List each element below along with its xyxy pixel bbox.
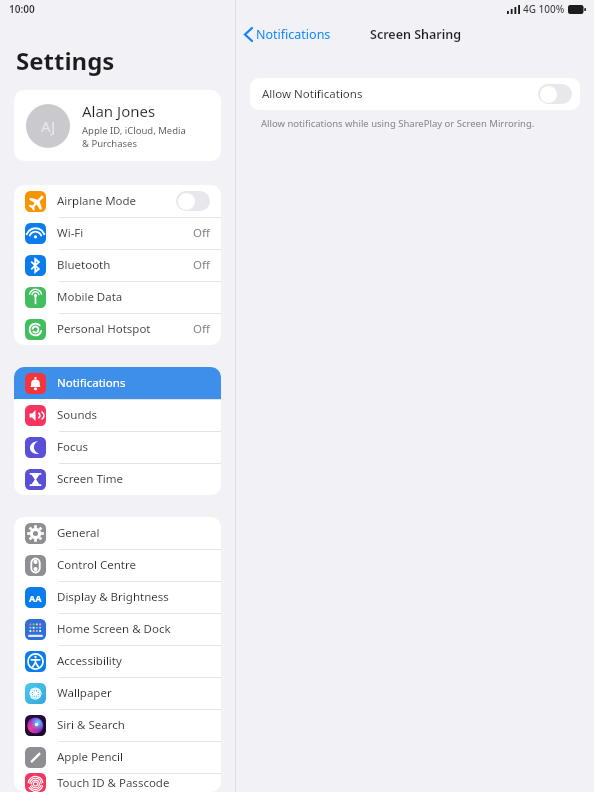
- staticText: Off: [193, 321, 210, 337]
- staticText: Bluetooth: [57, 257, 193, 273]
- staticText: Apple Pencil: [57, 749, 210, 765]
- button[interactable]: Accessibility: [14, 645, 221, 677]
- staticText: Settings: [16, 44, 115, 77]
- staticText: Wi-Fi: [57, 225, 193, 241]
- button[interactable]: Notifications: [14, 367, 221, 399]
- button[interactable]: Wallpaper: [14, 677, 221, 709]
- button[interactable]: Siri & Search: [14, 709, 221, 741]
- button[interactable]: Airplane Mode: [14, 185, 221, 217]
- staticText: Siri & Search: [57, 717, 210, 733]
- staticText: 10:00: [9, 2, 35, 16]
- staticText: Home Screen & Dock: [57, 621, 210, 637]
- button[interactable]: Sounds: [14, 399, 221, 431]
- button[interactable]: Bluetooth: [14, 249, 221, 281]
- button[interactable]: Wi-Fi: [14, 217, 221, 249]
- button[interactable]: Touch ID & Passcode: [14, 773, 221, 792]
- staticText: Airplane Mode: [57, 193, 176, 209]
- button[interactable]: Apple Pencil: [14, 741, 221, 773]
- staticText: Accessibility: [57, 653, 210, 669]
- staticText: Notifications: [256, 26, 331, 43]
- button[interactable]: Personal Hotspot: [14, 313, 221, 345]
- staticText: 4G 100%: [523, 2, 565, 16]
- staticText: Alan Jones: [82, 101, 156, 121]
- staticText: Off: [193, 225, 210, 241]
- button[interactable]: Focus: [14, 431, 221, 463]
- staticText: Sounds: [57, 407, 210, 423]
- button[interactable]: Notifications: [236, 24, 337, 45]
- staticText: Screen Time: [57, 471, 210, 487]
- button[interactable]: AA: [14, 581, 221, 613]
- staticText: AJ: [41, 116, 56, 136]
- staticText: Apple ID, iCloud, Media: [82, 124, 186, 137]
- staticText: Screen Sharing: [370, 26, 462, 43]
- staticText: Focus: [57, 439, 210, 455]
- staticText: Display & Brightness: [57, 589, 210, 605]
- staticText: Allow Notifications: [262, 86, 538, 102]
- staticText: Mobile Data: [57, 289, 210, 305]
- staticText: Touch ID & Passcode: [57, 775, 210, 791]
- staticText: Notifications: [57, 375, 210, 391]
- staticText: Wallpaper: [57, 685, 210, 701]
- staticText: General: [57, 525, 210, 541]
- staticText: Off: [193, 257, 210, 273]
- staticText: & Purchases: [82, 137, 137, 150]
- button[interactable]: Toggle off: [176, 191, 210, 211]
- button[interactable]: AJ: [14, 90, 221, 161]
- button[interactable]: Mobile Data: [14, 281, 221, 313]
- button[interactable]: Control Centre: [14, 549, 221, 581]
- staticText: AA: [29, 592, 42, 604]
- staticText: Allow notifications while using SharePla…: [261, 117, 535, 130]
- button[interactable]: Home Screen & Dock: [14, 613, 221, 645]
- button[interactable]: Allow Notifications: [250, 78, 580, 110]
- staticText: Control Centre: [57, 557, 210, 573]
- staticText: Personal Hotspot: [57, 321, 193, 337]
- button[interactable]: General: [14, 517, 221, 549]
- button[interactable]: Toggle off: [538, 84, 572, 104]
- button[interactable]: Screen Time: [14, 463, 221, 495]
